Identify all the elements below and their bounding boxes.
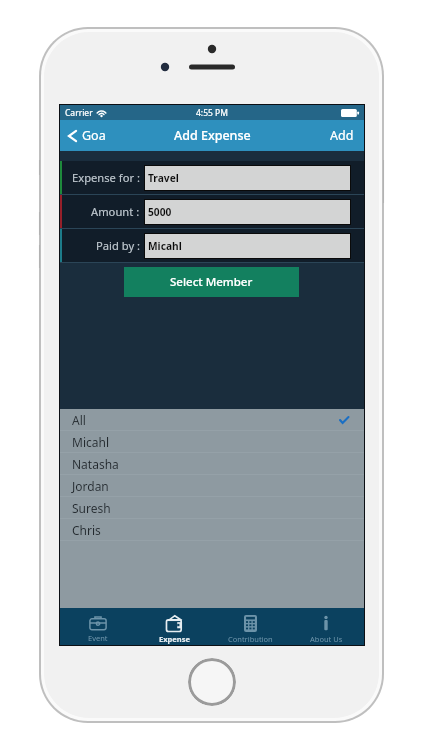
button[interactable]: All [60, 409, 364, 431]
staticText: Event [88, 633, 108, 643]
staticText: Paid by : [96, 238, 140, 253]
staticText: Chris [72, 522, 101, 538]
button[interactable]: Micahl [60, 431, 364, 453]
button[interactable]: Micahl [145, 234, 350, 258]
button[interactable]: Natasha [60, 453, 364, 475]
button[interactable]: About Us [288, 608, 364, 645]
button[interactable]: Expense [136, 608, 212, 645]
button[interactable]: Goa [60, 120, 116, 151]
staticText: Goa [82, 127, 106, 144]
button[interactable]: Chris [60, 519, 364, 541]
staticText: Amount : [91, 204, 140, 219]
staticText: Natasha [72, 456, 119, 472]
staticText: Add [330, 127, 354, 144]
staticText: Micahl [72, 434, 109, 450]
button[interactable]: 5000 [145, 200, 350, 224]
button[interactable]: Select Member [124, 267, 299, 297]
button[interactable]: Contribution [212, 608, 288, 645]
staticText: Add Expense [174, 127, 251, 144]
staticText: Travel [148, 171, 179, 185]
button[interactable]: Travel [145, 166, 350, 190]
staticText: Contribution [228, 634, 273, 644]
staticText: Expense for : [72, 170, 140, 185]
staticText: About Us [310, 634, 343, 644]
button[interactable]: Suresh [60, 497, 364, 519]
staticText: Micahl [148, 239, 182, 253]
staticText: All [72, 412, 86, 428]
button[interactable]: Event [60, 608, 136, 645]
staticText: Suresh [72, 500, 111, 516]
staticText: 5000 [148, 205, 172, 219]
button[interactable]: Add [320, 120, 364, 151]
staticText: 4:55 PM [196, 107, 228, 119]
button[interactable]: Jordan [60, 475, 364, 497]
staticText: Expense [159, 634, 190, 644]
staticText: Select Member [170, 274, 253, 290]
staticText: Jordan [72, 478, 109, 494]
staticText: Carrier [65, 107, 93, 119]
